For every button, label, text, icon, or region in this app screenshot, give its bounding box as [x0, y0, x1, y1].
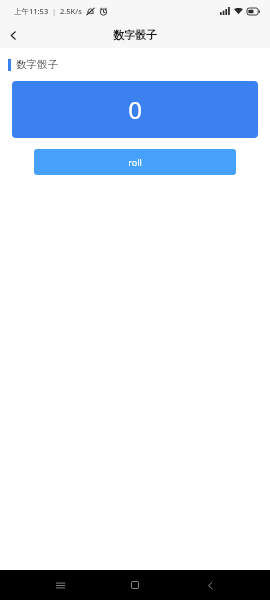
button[interactable]: Home: [120, 570, 150, 600]
button[interactable]: Back: [0, 22, 26, 48]
staticText: 数字骰子: [16, 58, 58, 71]
button[interactable]: Recent apps: [45, 570, 75, 600]
staticText: |: [52, 6, 57, 16]
staticText: 上午11:53: [14, 6, 49, 16]
staticText: 数字骰子: [113, 28, 157, 42]
button[interactable]: 0: [12, 81, 258, 138]
button[interactable]: roll: [34, 149, 236, 175]
button[interactable]: Back: [195, 570, 225, 600]
staticText: 2.5K/s: [60, 6, 82, 16]
staticText: 0: [128, 93, 142, 126]
staticText: roll: [128, 156, 142, 168]
